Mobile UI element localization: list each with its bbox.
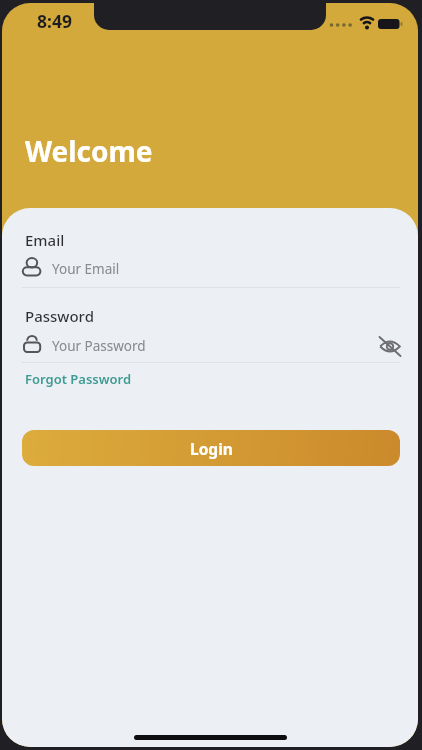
staticText: Password [25,306,94,326]
button[interactable]: Forgot Password [25,370,132,388]
staticText: Your Email [52,260,120,278]
button[interactable] [377,334,403,358]
staticText: Your Password [52,337,146,355]
button[interactable]: Your Password [20,330,400,364]
staticText: Welcome [25,132,153,170]
staticText: Login [190,438,233,459]
staticText: Email [25,230,65,250]
button[interactable]: Your Email [20,253,400,287]
button[interactable]: Login [22,430,400,466]
staticText: 8:49 [37,9,72,33]
